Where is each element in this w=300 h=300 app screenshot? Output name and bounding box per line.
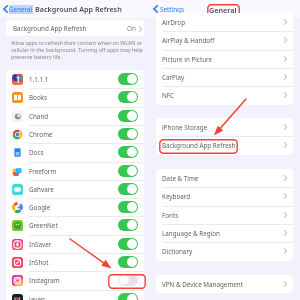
staticText: AirDrop (162, 18, 186, 27)
staticText: preserve battery life. (11, 53, 62, 60)
button[interactable]: Freeform (6, 162, 144, 180)
staticText: InSaver (29, 240, 52, 249)
button[interactable]: 1.1.1.1 (6, 70, 144, 88)
staticText: General (209, 5, 237, 15)
button[interactable]: Toggle off (118, 274, 138, 286)
button[interactable]: Dictionary (156, 242, 293, 260)
staticText: Picture in Picture (162, 55, 213, 64)
staticText: On (127, 24, 136, 33)
button[interactable]: InSaver (6, 235, 144, 253)
button[interactable]: Toggle on (118, 183, 138, 195)
button[interactable]: Settings (153, 0, 182, 18)
button[interactable]: AirPlay & Handoff (156, 31, 293, 49)
staticText: Settings (160, 5, 184, 14)
button[interactable]: Background App Refresh (156, 136, 293, 154)
button[interactable]: Chrome (6, 125, 144, 143)
button[interactable]: Date & Time (156, 169, 293, 187)
button[interactable]: Keyboard (156, 187, 293, 205)
staticText: CarPlay (162, 73, 185, 82)
button[interactable]: Toggle on (118, 73, 138, 85)
button[interactable]: Fonts (156, 206, 293, 224)
staticText: cellular in the background. Turning off … (11, 46, 143, 53)
staticText: VPN & Device Management (162, 280, 244, 289)
button[interactable]: Language & Region (156, 224, 293, 242)
staticText: Dictionary (162, 247, 193, 256)
button[interactable]: Toggle on (118, 238, 138, 250)
button[interactable]: Toggle on (118, 219, 138, 231)
staticText: General (9, 5, 33, 14)
button[interactable]: Toggle on (118, 256, 138, 268)
button[interactable]: Javan (6, 290, 144, 300)
button[interactable]: GreenNet (6, 216, 144, 234)
button[interactable]: Toggle on (118, 201, 138, 213)
button[interactable]: Chand (6, 107, 144, 125)
staticText: Freeform (29, 167, 57, 176)
button[interactable]: Toggle on (118, 293, 138, 300)
staticText: Chrome (29, 130, 53, 139)
staticText: Allow apps to refresh their content when… (11, 39, 143, 46)
staticText: Background App Refresh (13, 24, 87, 33)
staticText: Docs (29, 148, 44, 157)
staticText: iPhone Storage (162, 123, 208, 132)
staticText: Google (29, 203, 51, 212)
button[interactable]: Toggle on (118, 110, 138, 122)
button[interactable]: InShot (6, 253, 144, 271)
staticText: GreenNet (29, 221, 58, 230)
staticText: Chand (29, 112, 49, 121)
staticText: Books (29, 93, 48, 102)
staticText: Fonts (162, 211, 179, 220)
staticText: Language & Region (162, 229, 220, 238)
button[interactable]: Toggle on (118, 128, 138, 140)
button[interactable]: Toggle on (118, 91, 138, 103)
button[interactable]: Google (6, 198, 144, 216)
button[interactable]: VPN & Device Management (156, 275, 293, 293)
staticText: Javan (29, 295, 45, 300)
button[interactable]: AirDrop (156, 13, 293, 31)
staticText: NFC (162, 91, 175, 100)
button[interactable]: NFC (156, 86, 293, 104)
button[interactable]: Toggle on (118, 165, 138, 177)
button[interactable]: CarPlay (156, 68, 293, 86)
button[interactable]: Picture in Picture (156, 50, 293, 68)
button[interactable]: Docs (6, 143, 144, 161)
button[interactable]: General (3, 0, 32, 18)
staticText: Background App Refresh (35, 4, 122, 14)
staticText: Date & Time (162, 174, 199, 183)
staticText: Gahvare (29, 185, 54, 194)
button[interactable]: Gahvare (6, 180, 144, 198)
button[interactable]: Instagram (6, 271, 144, 289)
button[interactable]: Books (6, 88, 144, 106)
staticText: AirPlay & Handoff (162, 36, 215, 45)
button[interactable]: Background App Refresh (6, 20, 144, 36)
staticText: Keyboard (162, 192, 191, 201)
staticText: Background App Refresh (162, 141, 236, 150)
staticText: InShot (29, 258, 49, 267)
staticText: Instagram (29, 276, 60, 285)
staticText: 1.1.1.1 (29, 75, 49, 84)
button[interactable]: iPhone Storage (156, 118, 293, 136)
button[interactable]: Toggle on (118, 146, 138, 158)
